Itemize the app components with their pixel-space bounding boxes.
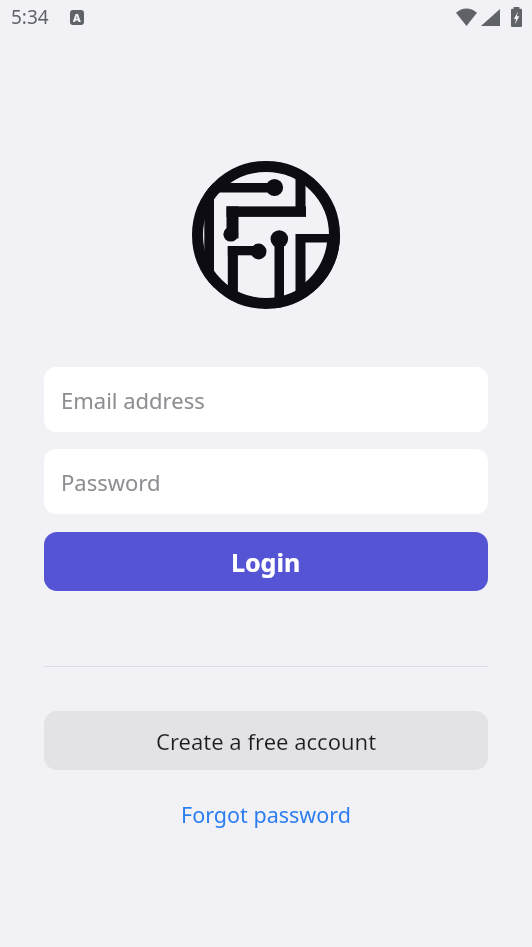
other: App logo	[191, 160, 341, 310]
staticText: Login	[231, 545, 301, 579]
button[interactable]: Password	[44, 449, 488, 514]
staticText: Forgot password	[181, 800, 351, 829]
staticText: Password	[61, 467, 161, 497]
button[interactable]: Forgot password	[44, 792, 488, 836]
staticText: Email address	[61, 385, 205, 415]
staticText: A	[73, 10, 81, 25]
button[interactable]: Email address	[44, 367, 488, 432]
other: Battery	[511, 7, 522, 27]
button[interactable]: Create a free account	[44, 711, 488, 770]
staticText: Create a free account	[156, 726, 377, 756]
button[interactable]: Login	[44, 532, 488, 591]
other: Wifi	[456, 9, 477, 26]
other: Signal	[481, 9, 500, 26]
staticText: 5:34	[11, 4, 49, 30]
